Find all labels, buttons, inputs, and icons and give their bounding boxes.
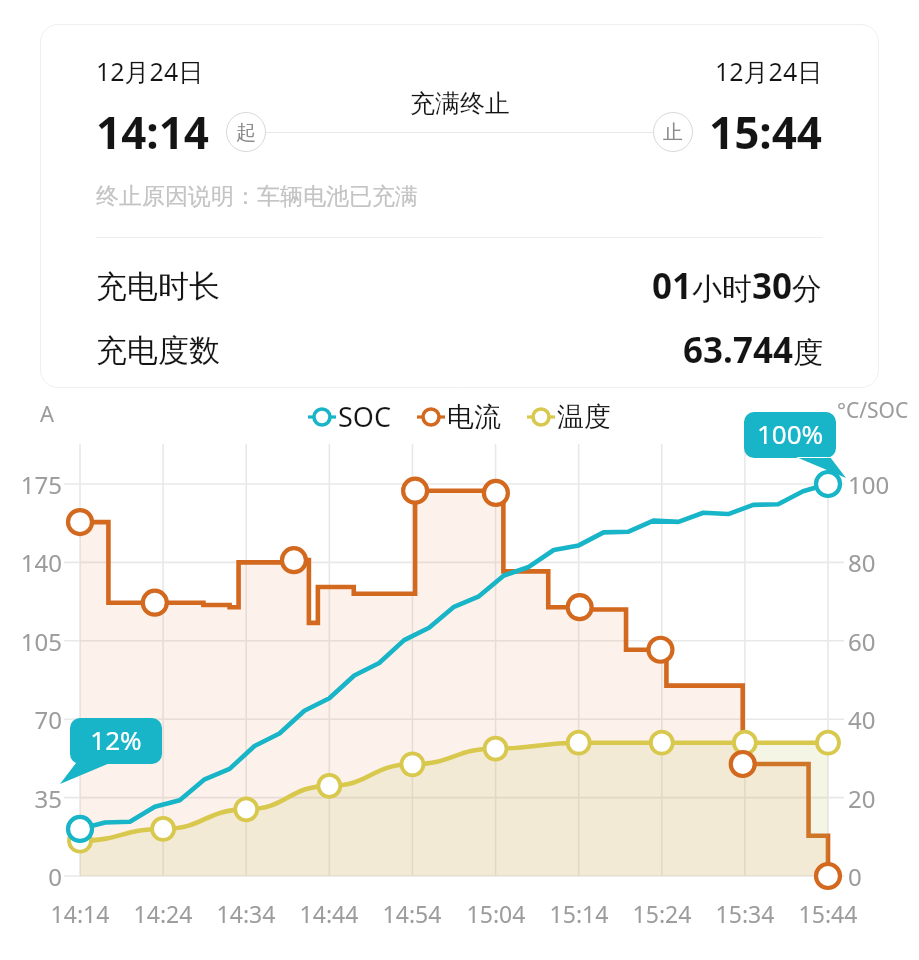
staticText: 起 [236,120,256,145]
staticText: 0 [0,860,62,893]
staticText: 14:24 [123,898,203,929]
button[interactable]: End [653,112,693,152]
staticText: 12月24日 [96,54,204,88]
staticText: 充满终止 [410,88,510,119]
staticText: 80 [848,546,876,579]
staticText: 0 [848,860,862,893]
staticText: 15:24 [622,898,702,929]
staticText: 15:44 [788,898,868,929]
button[interactable]: SOC [308,398,391,435]
button[interactable]: 充电时长 [96,262,823,310]
staticText: 100 [848,468,890,501]
button[interactable]: Start [226,112,266,152]
staticText: 止 [663,120,683,145]
staticText: 14:44 [289,898,369,929]
button[interactable]: 12月24日 [40,24,879,388]
staticText: 40 [848,703,876,736]
staticText: 15:44 [709,102,823,162]
staticText: 14:54 [372,898,452,929]
staticText: 63.744度 [683,326,823,374]
staticText: 20 [848,782,876,815]
staticText: SOC [338,398,391,435]
staticText: 60 [848,625,876,658]
staticText: 电流 [447,400,501,434]
staticText: 15:14 [539,898,619,929]
staticText: °C/SOC [837,396,909,425]
staticText: A [40,398,55,428]
staticText: 01小时30分 [652,262,823,310]
staticText: 充电度数 [96,331,220,370]
staticText: 105 [0,625,62,658]
staticText: 终止原因说明：车辆电池已充满 [96,182,418,211]
staticText: 充电时长 [96,267,220,306]
staticText: 175 [0,468,62,501]
staticText: 140 [0,546,62,579]
staticText: 15:04 [456,898,536,929]
staticText: 14:34 [206,898,286,929]
staticText: 35 [0,782,62,815]
staticText: 温度 [557,400,611,434]
button[interactable]: 温度 [527,400,611,434]
staticText: 15:34 [705,898,785,929]
staticText: 70 [0,703,62,736]
staticText: 14:14 [96,102,210,162]
staticText: 14:14 [40,898,120,929]
staticText: 100% [744,416,836,451]
button[interactable]: 充电度数 [96,326,823,374]
button[interactable]: 电流 [417,400,501,434]
staticText: 12月24日 [715,54,823,88]
staticText: 12% [70,722,162,757]
